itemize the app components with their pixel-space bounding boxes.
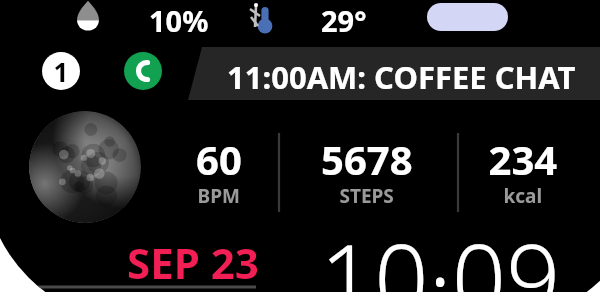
button[interactable]: Battery <box>424 2 510 32</box>
button[interactable]: Phone call <box>124 52 162 90</box>
button[interactable]: 11:00AM Coffee Chat event <box>188 47 600 101</box>
button[interactable]: 1 notification <box>42 52 80 90</box>
button[interactable]: 5678 steps <box>288 130 448 212</box>
button[interactable]: Moon phase <box>24 104 150 232</box>
button[interactable]: Date September 23 <box>118 230 288 290</box>
button[interactable]: Humidity 10 percent <box>60 0 180 40</box>
button[interactable]: Temperature 29 degrees <box>240 0 370 40</box>
button[interactable]: Heart rate 60 BPM <box>178 130 278 212</box>
button[interactable]: Time 10:09 <box>318 214 588 292</box>
button[interactable]: 234 kilocalories <box>466 130 590 212</box>
